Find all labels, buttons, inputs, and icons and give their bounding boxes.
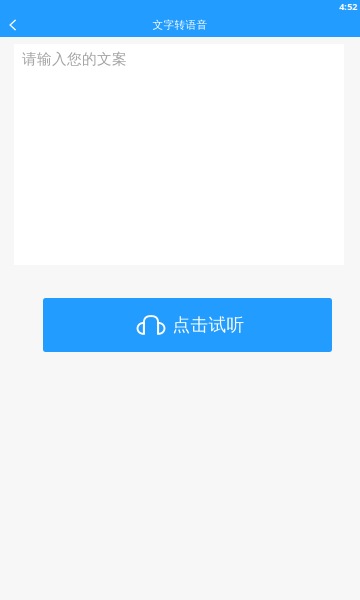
staticText: 点击试听 <box>172 314 244 336</box>
button[interactable]: 点击试听 <box>43 298 332 352</box>
button[interactable]: 请输入您的文案 <box>14 44 344 265</box>
button[interactable]: Back <box>0 13 26 37</box>
staticText: 请输入您的文案 <box>22 50 127 68</box>
staticText: 文字转语音 <box>152 18 207 32</box>
staticText: 4:52 <box>339 0 357 13</box>
